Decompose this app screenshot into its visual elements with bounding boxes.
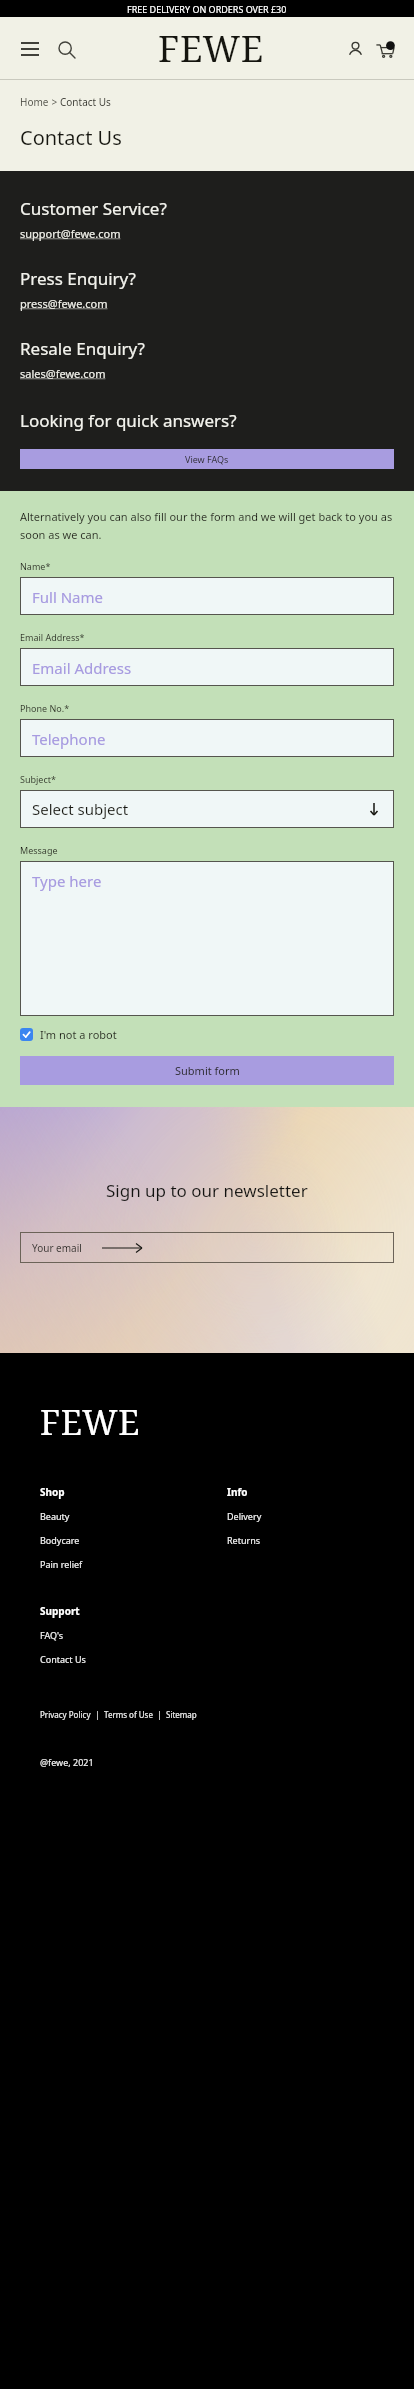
button[interactable]: Search xyxy=(52,35,80,63)
button[interactable]: Full Name xyxy=(20,577,394,615)
staticText: Shop xyxy=(40,1485,65,1499)
button[interactable]: Terms of Use xyxy=(104,1709,153,1720)
staticText: Alternatively you can also fill our the … xyxy=(20,509,394,542)
staticText: FREE DELIVERY ON ORDERS OVER £30 xyxy=(127,3,287,15)
staticText: Phone No.* xyxy=(20,702,70,714)
staticText: Looking for quick answers? xyxy=(20,409,237,432)
staticText: Full Name xyxy=(32,587,103,607)
staticText: I'm not a robot xyxy=(40,1027,117,1042)
button[interactable]: Menu xyxy=(16,35,44,63)
button[interactable]: Privacy Policy xyxy=(40,1709,91,1720)
staticText: Type here xyxy=(32,871,102,891)
staticText: Submit form xyxy=(175,1063,240,1078)
staticText: | xyxy=(153,1709,166,1720)
button[interactable]: sales@fewe.com xyxy=(20,366,106,381)
button[interactable]: press@fewe.com xyxy=(20,296,108,311)
staticText: Your email xyxy=(32,1241,82,1255)
button[interactable]: Email Address xyxy=(20,648,394,686)
staticText: @fewe, 2021 xyxy=(40,1756,94,1768)
staticText: Subject* xyxy=(20,773,56,785)
button[interactable]: View FAQs xyxy=(20,449,394,469)
button[interactable]: Contact Us xyxy=(40,1653,86,1665)
button[interactable]: Pain relief xyxy=(40,1558,83,1570)
button[interactable]: FAQ's xyxy=(40,1629,64,1641)
staticText: Press Enquiry? xyxy=(20,267,136,290)
staticText: Email Address* xyxy=(20,631,85,643)
button[interactable]: support@fewe.com xyxy=(20,226,121,241)
staticText: Customer Service? xyxy=(20,197,167,220)
staticText: Contact Us xyxy=(20,124,122,151)
staticText: View FAQs xyxy=(185,453,229,465)
button[interactable]: Cart xyxy=(372,36,398,62)
button[interactable]: Select subject xyxy=(20,790,394,828)
staticText: Name* xyxy=(20,560,51,572)
staticText: Support xyxy=(40,1604,80,1618)
staticText: | xyxy=(91,1709,104,1720)
button[interactable]: Telephone xyxy=(20,719,394,757)
staticText: Telephone xyxy=(32,729,106,749)
button[interactable]: Bodycare xyxy=(40,1534,80,1546)
staticText: FEWE xyxy=(40,1399,141,1445)
staticText: Contact Us xyxy=(60,95,111,109)
staticText: Info xyxy=(227,1485,248,1499)
button[interactable]: Type here xyxy=(20,861,394,1016)
staticText: Resale Enquiry? xyxy=(20,337,145,360)
button[interactable]: Your email xyxy=(20,1232,394,1263)
button[interactable]: Home xyxy=(20,95,49,109)
staticText: Select subject xyxy=(32,799,129,819)
button[interactable]: Beauty xyxy=(40,1510,70,1522)
button[interactable]: Account xyxy=(342,36,368,62)
button[interactable]: Submit form xyxy=(20,1056,394,1085)
button[interactable]: Returns xyxy=(227,1534,261,1546)
button[interactable]: Delivery xyxy=(227,1510,262,1522)
staticText: Email Address xyxy=(32,658,132,678)
button[interactable]: I'm not a robot xyxy=(20,1027,117,1042)
button[interactable]: Sitemap xyxy=(166,1709,197,1720)
staticText: Message xyxy=(20,844,58,856)
staticText: Sign up to our newsletter xyxy=(106,1179,308,1202)
staticText: FEWE xyxy=(158,24,264,73)
staticText: > xyxy=(49,95,60,109)
